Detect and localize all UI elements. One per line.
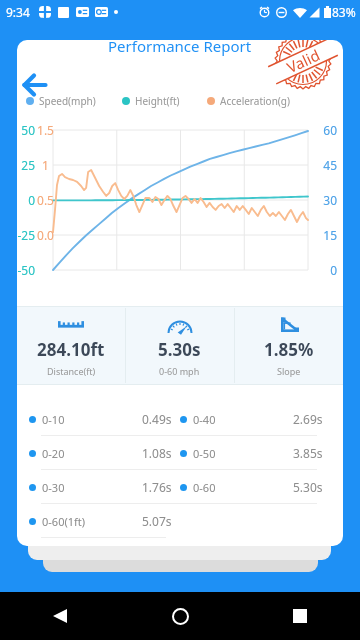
staticText: 0-60 bbox=[193, 480, 216, 495]
staticText: -50 bbox=[17, 262, 35, 278]
staticText: 0.49s bbox=[142, 411, 172, 427]
staticText: 2.69s bbox=[293, 411, 323, 427]
staticText: 0 bbox=[319, 262, 337, 278]
button[interactable]: 0-60 bbox=[180, 470, 331, 504]
staticText: 0-60(1ft) bbox=[42, 514, 86, 529]
button[interactable]: Back bbox=[0, 592, 120, 640]
staticText: 0-20 bbox=[42, 446, 65, 461]
button[interactable]: 0-30 bbox=[29, 470, 180, 504]
staticText: 60 bbox=[319, 122, 337, 138]
staticText: 15 bbox=[319, 227, 337, 243]
staticText: 1.08s bbox=[142, 445, 172, 461]
staticText: -25 bbox=[17, 227, 35, 243]
button[interactable]: Back bbox=[21, 73, 49, 97]
staticText: 45 bbox=[319, 157, 337, 173]
button[interactable]: Recents bbox=[240, 592, 360, 640]
staticText: 83% bbox=[332, 4, 356, 20]
staticText: 5.30s bbox=[158, 338, 201, 361]
staticText: 0-10 bbox=[42, 412, 65, 427]
button[interactable]: 1.85% bbox=[234, 306, 343, 385]
staticText: 25 bbox=[17, 157, 35, 173]
staticText: 0.0 bbox=[36, 227, 55, 243]
staticText: Height(ft) bbox=[135, 94, 180, 108]
staticText: 0-60 mph bbox=[159, 365, 200, 377]
staticText: Slope bbox=[277, 365, 301, 377]
button[interactable]: 0-40 bbox=[180, 402, 331, 436]
staticText: Performance Report bbox=[108, 36, 252, 56]
button[interactable]: 0-60(1ft) bbox=[29, 504, 180, 538]
button[interactable]: 0-50 bbox=[180, 436, 331, 470]
staticText: 3.85s bbox=[293, 445, 323, 461]
staticText: 0.5 bbox=[36, 192, 55, 208]
staticText: 0-40 bbox=[193, 412, 216, 427]
staticText: 9:34 bbox=[6, 4, 30, 20]
staticText: 50 bbox=[17, 122, 35, 138]
staticText: 5.30s bbox=[293, 479, 323, 495]
staticText: 5.07s bbox=[142, 513, 172, 529]
staticText: 0-30 bbox=[42, 480, 65, 495]
staticText: 1.85% bbox=[264, 338, 314, 361]
staticText: Valid bbox=[283, 44, 324, 77]
button[interactable]: 5.30s bbox=[125, 306, 234, 385]
staticText: 1.76s bbox=[142, 479, 172, 495]
staticText: 0 bbox=[17, 192, 35, 208]
staticText: 284.10ft bbox=[37, 338, 105, 361]
staticText: Acceleration(g) bbox=[220, 94, 290, 108]
staticText: 1.5 bbox=[36, 122, 55, 138]
button[interactable]: 284.10ft bbox=[17, 306, 125, 385]
staticText: 1 bbox=[36, 157, 55, 173]
staticText: 0-50 bbox=[193, 446, 216, 461]
button[interactable]: 0-20 bbox=[29, 436, 180, 470]
button[interactable]: 0-10 bbox=[29, 402, 180, 436]
button[interactable]: Home bbox=[120, 592, 240, 640]
staticText: Distance(ft) bbox=[47, 365, 96, 377]
staticText: Speed(mph) bbox=[39, 94, 96, 108]
staticText: 30 bbox=[319, 192, 337, 208]
